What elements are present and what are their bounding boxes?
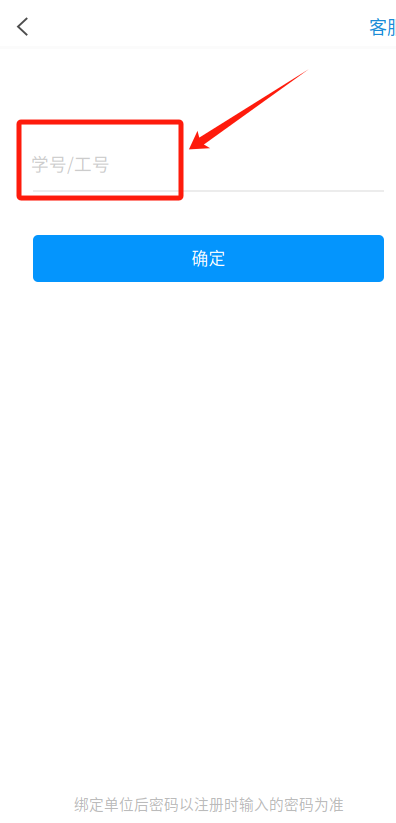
staticText: 学号/工号 bbox=[31, 150, 110, 176]
staticText: 客服 bbox=[369, 13, 396, 39]
staticText: 确定 bbox=[191, 245, 225, 269]
staticText: 绑定单位后密码以注册时输入的密码为准 bbox=[74, 793, 344, 814]
button[interactable]: 学号/工号 bbox=[33, 144, 384, 192]
button[interactable]: Back bbox=[0, 0, 43, 48]
button[interactable]: 客服 bbox=[359, 0, 396, 53]
button[interactable]: 确定 bbox=[33, 235, 384, 282]
